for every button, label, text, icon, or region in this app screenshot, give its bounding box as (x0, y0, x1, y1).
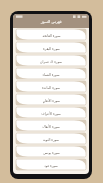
staticText: سورة هود (44, 163, 58, 167)
button[interactable]: سورة الأعراف (16, 107, 86, 118)
button[interactable]: سورة الأنفال (16, 120, 86, 131)
staticText: سورة التوبة (43, 137, 59, 141)
staticText: سورة آل عمران (40, 59, 62, 63)
staticText: سورة يونس (43, 150, 60, 154)
staticText: سورة البقرة (43, 46, 60, 50)
staticText: سورة الأعراف (41, 111, 61, 115)
button[interactable]: سورة النساء (16, 68, 86, 79)
button[interactable]: سورة الأنعام (16, 94, 86, 105)
button[interactable]: سورة آل عمران (16, 55, 86, 66)
staticText: سورة الأنفال (42, 124, 60, 128)
staticText: سورة الأنعام (43, 98, 60, 102)
button[interactable]: سورة هود (16, 159, 86, 170)
staticText: فهرس السور (41, 19, 62, 24)
button[interactable]: سورة البقرة (16, 42, 86, 53)
button[interactable]: سورة يونس (16, 146, 86, 157)
staticText: سورة الفاتحة (42, 33, 61, 37)
button[interactable]: سورة الفاتحة (16, 29, 86, 40)
button[interactable]: سورة المائدة (16, 81, 86, 92)
button[interactable]: سورة التوبة (16, 133, 86, 144)
staticText: سورة النساء (42, 72, 60, 76)
staticText: سورة المائدة (42, 85, 60, 89)
